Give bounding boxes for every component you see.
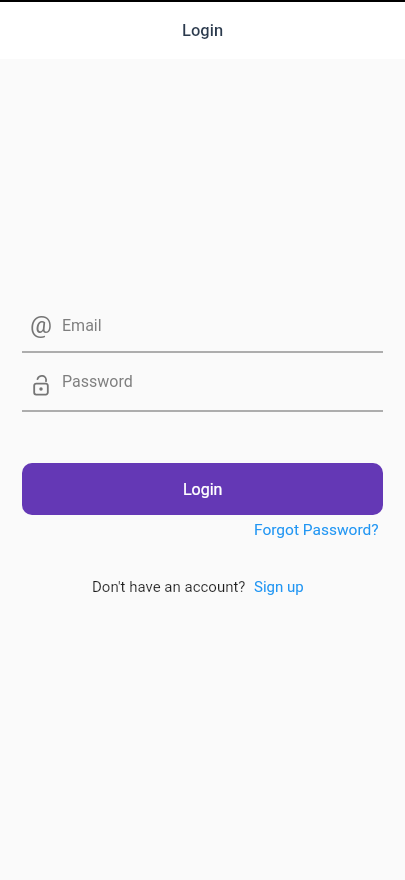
- button[interactable]: Login: [22, 463, 383, 515]
- staticText: Forgot Password?: [254, 521, 379, 539]
- button[interactable]: @: [22, 300, 383, 353]
- staticText: Email: [62, 316, 102, 335]
- staticText: Sign up: [254, 578, 304, 596]
- staticText: Password: [62, 372, 133, 391]
- button[interactable]: Sign up: [254, 578, 304, 596]
- button[interactable]: Forgot Password?: [254, 521, 379, 539]
- staticText: Login: [183, 480, 223, 499]
- staticText: Login: [182, 21, 224, 40]
- button[interactable]: Password: [22, 353, 383, 412]
- staticText: Don't have an account?: [92, 578, 246, 596]
- staticText: @: [30, 310, 52, 332]
